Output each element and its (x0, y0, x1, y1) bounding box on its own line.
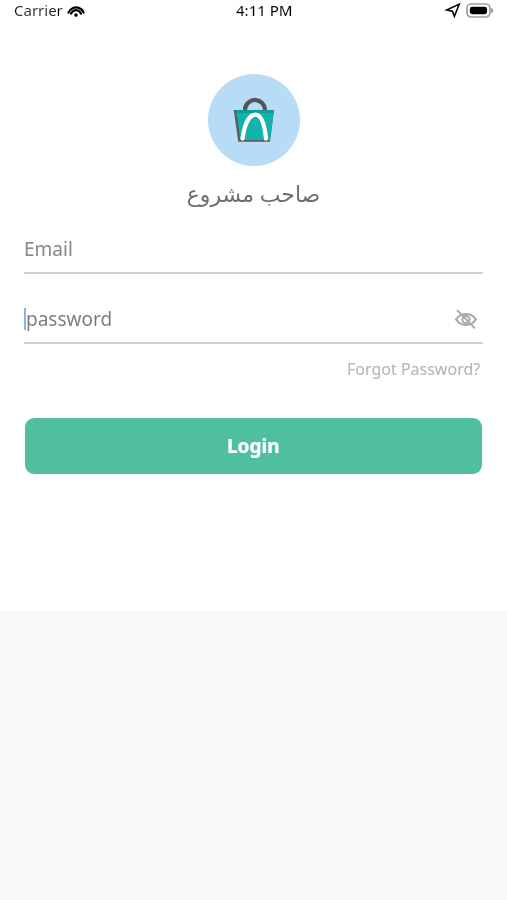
staticText: 4:11 PM (236, 0, 293, 20)
staticText: password (26, 306, 113, 332)
button[interactable]: Login (25, 418, 482, 474)
button[interactable]: Show password (449, 302, 483, 336)
staticText: Carrier (14, 0, 63, 20)
staticText: Forgot Password? (347, 358, 481, 380)
button[interactable]: Forgot Password? (345, 354, 483, 384)
staticText: Email (24, 236, 73, 262)
staticText: صاحب مشروع (0, 178, 507, 208)
staticText: Login (227, 433, 280, 459)
